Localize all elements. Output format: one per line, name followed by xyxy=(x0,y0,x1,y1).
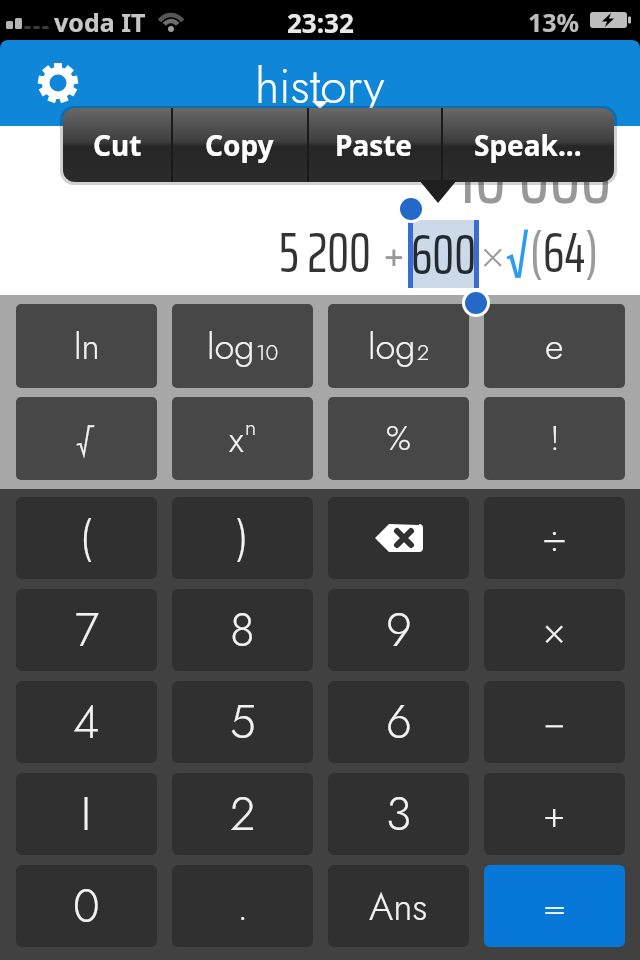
staticText: √ xyxy=(506,210,530,297)
staticText: − xyxy=(543,695,566,750)
button[interactable]: 8 xyxy=(172,589,313,671)
staticText: Speak... xyxy=(474,126,582,164)
staticText: Copy xyxy=(205,126,274,164)
staticText: × xyxy=(543,603,566,658)
button[interactable]: 0 xyxy=(16,865,157,947)
button[interactable]: ÷ xyxy=(484,497,625,579)
staticText: . xyxy=(237,877,249,935)
button[interactable]: Speak... xyxy=(441,108,614,182)
staticText: ) xyxy=(586,210,599,297)
button[interactable]: log xyxy=(328,304,469,388)
button[interactable]: . xyxy=(172,865,313,947)
staticText: 0 xyxy=(73,873,100,939)
button[interactable]: Copy xyxy=(171,108,307,182)
button[interactable]: √ xyxy=(16,397,157,480)
staticText: log xyxy=(207,320,255,372)
staticText: ( xyxy=(530,210,543,297)
staticText: 6 xyxy=(386,689,412,755)
button[interactable] xyxy=(38,63,78,103)
staticText: ( xyxy=(80,506,93,570)
button[interactable]: 600 xyxy=(408,220,479,288)
staticText: 8 xyxy=(230,597,255,663)
staticText: voda IT xyxy=(54,5,146,39)
button[interactable]: % xyxy=(328,397,469,480)
staticText: 4 xyxy=(73,689,100,755)
staticText: Paste xyxy=(335,126,413,164)
staticText: e xyxy=(545,320,564,372)
button[interactable] xyxy=(328,497,469,579)
button[interactable]: x xyxy=(172,397,313,480)
button[interactable]: ) xyxy=(172,497,313,579)
button[interactable]: ( xyxy=(16,497,157,579)
button[interactable]: 7 xyxy=(16,589,157,671)
staticText: Ans xyxy=(369,879,428,934)
staticText: I xyxy=(81,781,92,847)
staticText: % xyxy=(386,414,411,463)
button[interactable]: 2 xyxy=(172,773,313,855)
button[interactable]: Cut xyxy=(63,108,171,182)
staticText: 13% xyxy=(528,5,580,39)
staticText: 600 xyxy=(411,212,477,280)
staticText: = xyxy=(543,879,567,934)
staticText: ) xyxy=(236,506,249,570)
button[interactable]: − xyxy=(484,681,625,763)
button[interactable]: Ans xyxy=(328,865,469,947)
staticText: n xyxy=(245,411,257,443)
staticText: 10 000 xyxy=(457,114,612,237)
staticText: history xyxy=(255,52,385,121)
button[interactable]: × xyxy=(484,589,625,671)
button[interactable]: ! xyxy=(484,397,625,480)
staticText: 23:32 xyxy=(287,5,354,40)
button[interactable]: 6 xyxy=(328,681,469,763)
button[interactable]: 4 xyxy=(16,681,157,763)
button[interactable]: + xyxy=(484,773,625,855)
staticText: + xyxy=(543,787,566,842)
staticText: Cut xyxy=(93,126,142,164)
staticText: 9 xyxy=(386,597,412,663)
staticText: ln xyxy=(74,320,100,372)
button[interactable]: Paste xyxy=(307,108,441,182)
button[interactable]: 5 xyxy=(172,681,313,763)
staticText: 7 xyxy=(75,597,99,663)
button[interactable]: = xyxy=(484,865,625,947)
staticText: 2 xyxy=(417,336,430,368)
staticText: 5 xyxy=(230,689,256,755)
staticText: 3 xyxy=(386,781,412,847)
button[interactable]: e xyxy=(484,304,625,388)
staticText: x xyxy=(229,413,244,465)
staticText: ÷ xyxy=(542,509,567,567)
staticText: √ xyxy=(75,411,98,466)
staticText: 10 xyxy=(256,336,279,368)
staticText: 5 200 xyxy=(279,210,371,297)
button[interactable]: log xyxy=(172,304,313,388)
staticText: + xyxy=(383,216,405,292)
staticText: ! xyxy=(550,414,560,463)
staticText: × xyxy=(481,225,505,283)
staticText: 64 xyxy=(543,210,586,297)
button[interactable]: ln xyxy=(16,304,157,388)
button[interactable]: I xyxy=(16,773,157,855)
button[interactable]: 9 xyxy=(328,589,469,671)
staticText: 2 xyxy=(230,781,256,847)
staticText: log xyxy=(368,320,416,372)
button[interactable]: 3 xyxy=(328,773,469,855)
